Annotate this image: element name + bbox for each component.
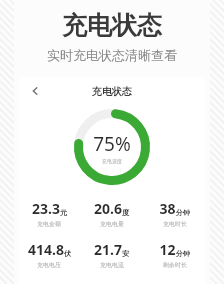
button[interactable]: 23.3: [18, 199, 80, 228]
button[interactable]: 20.6: [80, 199, 143, 228]
staticText: 38: [159, 199, 176, 218]
staticText: 20.6: [94, 199, 122, 218]
staticText: 充电金额: [37, 220, 61, 228]
staticText: 元: [60, 208, 67, 217]
staticText: 75%: [93, 131, 131, 157]
button[interactable]: Back: [24, 80, 46, 102]
staticText: 充电状态: [92, 85, 132, 98]
staticText: 21.7: [94, 240, 122, 259]
staticText: 伏: [64, 249, 71, 258]
staticText: 充电电流: [100, 261, 124, 269]
staticText: 度: [122, 208, 129, 217]
staticText: 充电时长: [163, 220, 187, 228]
staticText: 分钟: [176, 249, 190, 258]
staticText: 充电状态: [62, 10, 162, 41]
staticText: 23.3: [32, 199, 60, 218]
staticText: 12: [159, 240, 176, 259]
staticText: 剩余时长: [163, 261, 187, 269]
staticText: 充电电压: [37, 261, 61, 269]
staticText: 分钟: [176, 208, 190, 217]
button[interactable]: 12: [143, 240, 206, 269]
button[interactable]: 38: [143, 199, 206, 228]
staticText: 充电进度: [102, 158, 122, 164]
button[interactable]: 414.8: [18, 240, 80, 269]
button[interactable]: 21.7: [80, 240, 143, 269]
staticText: 安: [122, 249, 129, 258]
staticText: 414.8: [28, 240, 64, 259]
staticText: 充电电量: [100, 220, 124, 228]
staticText: 实时充电状态清晰查看: [47, 47, 177, 63]
